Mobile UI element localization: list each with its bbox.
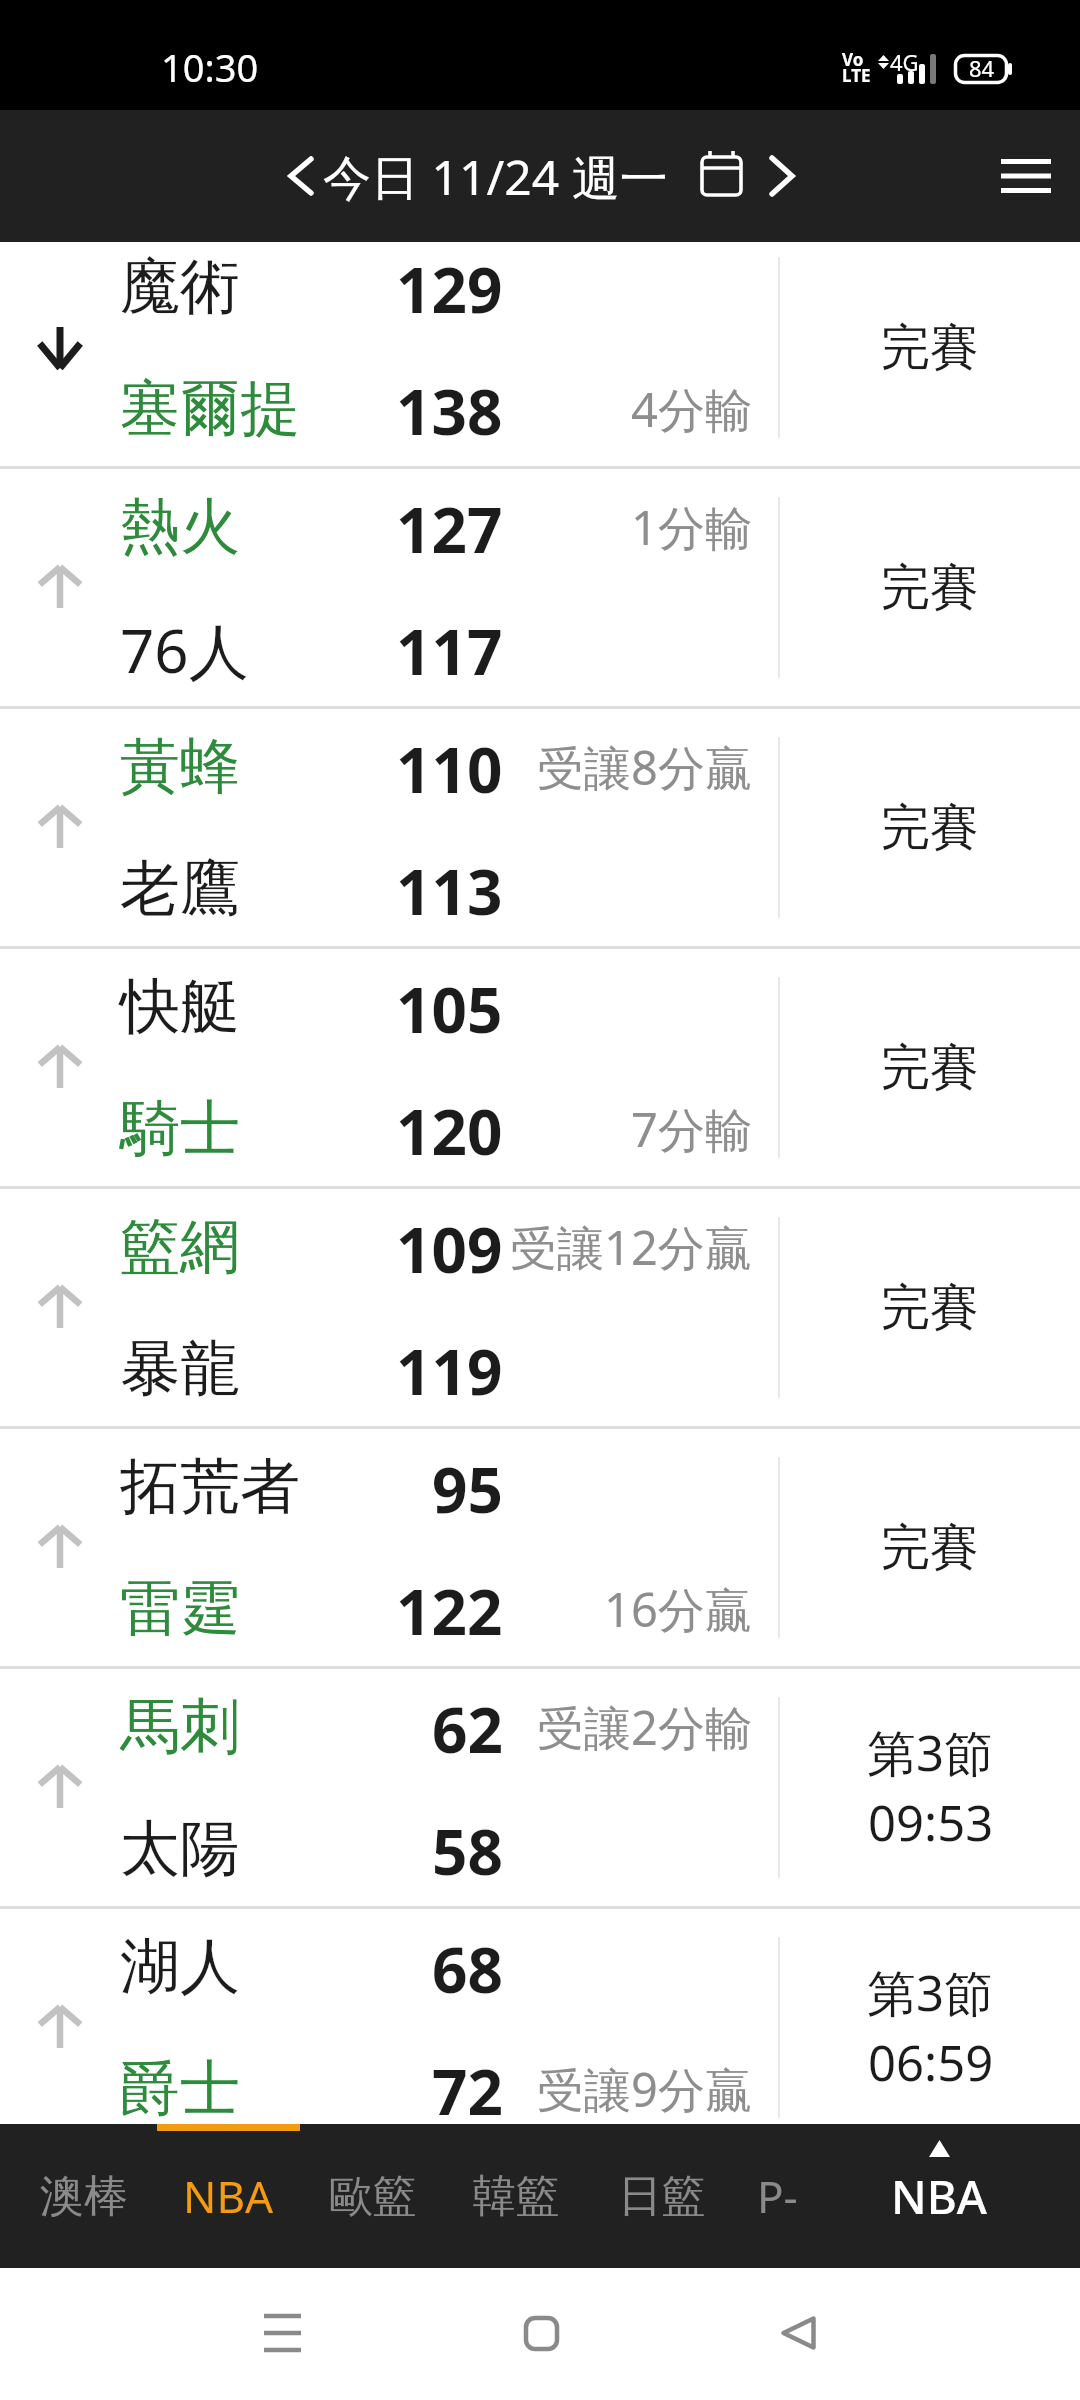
staticText: 7分輸: [631, 1097, 752, 1161]
staticText: 熱火: [120, 489, 240, 565]
button[interactable]: 湖人: [0, 1909, 1080, 2124]
staticText: 騎士: [120, 1091, 240, 1167]
staticText: 72: [432, 2049, 503, 2124]
staticText: 完賽: [881, 557, 979, 619]
staticText: 拓荒者: [120, 1449, 300, 1525]
button[interactable]: Back: [738, 2273, 858, 2393]
button[interactable]: NBA: [826, 2124, 1052, 2268]
button[interactable]: Recent apps: [222, 2273, 342, 2393]
staticText: 138: [396, 369, 503, 449]
staticText: 58: [432, 1809, 503, 1889]
staticText: 雷霆: [120, 1571, 240, 1647]
staticText: 老鷹: [120, 851, 240, 927]
button[interactable]: 籃網: [0, 1189, 1080, 1426]
staticText: 魔術: [120, 249, 240, 325]
staticText: 76人: [120, 609, 249, 689]
staticText: 塞爾提: [120, 371, 300, 447]
staticText: 119: [396, 1329, 503, 1409]
staticText: 完賽: [881, 797, 979, 859]
staticText: 受讓12分贏: [510, 1215, 752, 1279]
button[interactable]: 熱火: [0, 469, 1080, 706]
staticText: NBA: [891, 2165, 987, 2228]
staticText: 117: [396, 609, 503, 689]
button[interactable]: 澳棒: [13, 2124, 155, 2268]
staticText: 暴龍: [120, 1331, 240, 1407]
staticText: NBA: [183, 2166, 274, 2226]
staticText: 84: [969, 53, 995, 83]
staticText: 06:59: [868, 2029, 994, 2096]
staticText: LTE: [842, 64, 871, 87]
staticText: 澳棒: [40, 2169, 128, 2224]
staticText: 120: [396, 1089, 503, 1169]
staticText: 太陽: [120, 1811, 240, 1887]
staticText: 127: [396, 487, 503, 567]
staticText: P-: [757, 2166, 798, 2226]
button[interactable]: 馬刺: [0, 1669, 1080, 1906]
staticText: 62: [432, 1687, 503, 1767]
staticText: 今日 11/24 週一: [323, 144, 668, 210]
staticText: 109: [396, 1207, 503, 1287]
staticText: Vo: [842, 48, 864, 71]
button[interactable]: NBA: [157, 2124, 299, 2268]
staticText: 68: [432, 1927, 503, 2007]
staticText: 129: [396, 247, 503, 327]
button[interactable]: P-: [706, 2124, 848, 2268]
staticText: 完賽: [881, 317, 979, 379]
staticText: 歐籃: [329, 2169, 417, 2224]
staticText: 1分輸: [631, 495, 752, 559]
staticText: 113: [396, 849, 503, 929]
button[interactable]: Menu: [976, 126, 1076, 226]
staticText: 完賽: [881, 1037, 979, 1099]
button[interactable]: 韓籃: [445, 2124, 587, 2268]
staticText: 韓籃: [472, 2169, 560, 2224]
button[interactable]: 日籃: [591, 2124, 733, 2268]
button[interactable]: Next day: [752, 138, 812, 214]
button[interactable]: 魔術: [0, 242, 1080, 466]
button[interactable]: Home: [481, 2273, 601, 2393]
staticText: 122: [396, 1569, 503, 1649]
staticText: 4G: [890, 47, 919, 77]
staticText: 4分輸: [631, 377, 752, 441]
staticText: 黃蜂: [120, 729, 240, 805]
staticText: 受讓8分贏: [537, 735, 752, 799]
staticText: 110: [396, 727, 503, 807]
staticText: 受讓2分輸: [537, 1695, 752, 1759]
staticText: 馬刺: [120, 1689, 240, 1765]
button[interactable]: Previous day: [271, 138, 331, 214]
staticText: 第3節: [867, 1959, 994, 2026]
staticText: 受讓9分贏: [537, 2057, 752, 2121]
staticText: 105: [396, 967, 503, 1047]
staticText: 湖人: [120, 1929, 240, 2005]
button[interactable]: 快艇: [0, 949, 1080, 1186]
staticText: 日籃: [618, 2169, 706, 2224]
button[interactable]: 拓荒者: [0, 1429, 1080, 1666]
button[interactable]: 歐籃: [302, 2124, 444, 2268]
staticText: 籃網: [120, 1209, 240, 1285]
staticText: 快艇: [120, 969, 240, 1045]
staticText: 爵士: [120, 2051, 240, 2124]
button[interactable]: 黃蜂: [0, 709, 1080, 946]
staticText: 16分贏: [604, 1577, 752, 1641]
staticText: 10:30: [161, 41, 259, 93]
button[interactable]: Calendar: [692, 138, 752, 214]
staticText: 95: [432, 1447, 503, 1527]
staticText: 第3節: [867, 1719, 994, 1786]
staticText: 完賽: [881, 1277, 979, 1339]
staticText: 09:53: [868, 1789, 994, 1856]
staticText: 完賽: [881, 1517, 979, 1579]
